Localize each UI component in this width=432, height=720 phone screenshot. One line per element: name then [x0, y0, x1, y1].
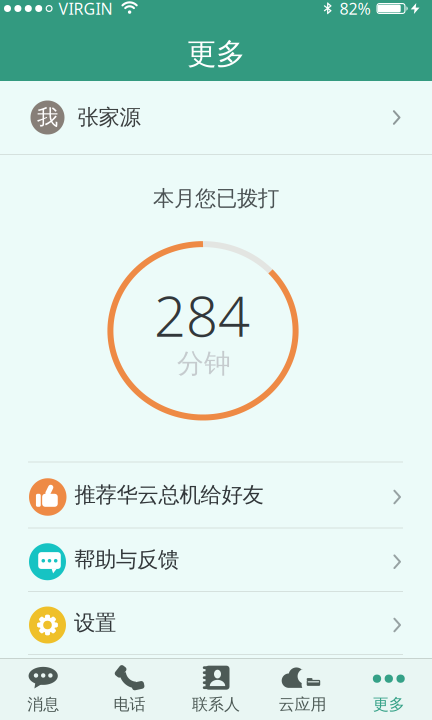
staticText: 284 [154, 278, 250, 352]
staticText: 电话 [114, 695, 146, 714]
staticText: 帮助与反馈 [74, 547, 179, 573]
button[interactable]: 云应用 [259, 657, 346, 720]
button[interactable]: 帮助与反馈 [0, 528, 432, 591]
staticText: 张家源 [77, 104, 140, 131]
staticText: 推荐华云总机给好友 [74, 482, 263, 508]
button[interactable]: 联系人 [173, 657, 259, 720]
staticText: 消息 [27, 695, 59, 714]
button[interactable]: 我 [0, 81, 432, 154]
staticText: 更多 [187, 36, 245, 72]
staticText: 本月您已拨打 [153, 185, 279, 212]
staticText: 82% [339, 0, 370, 19]
staticText: 联系人 [192, 695, 240, 714]
staticText: 我 [37, 104, 58, 131]
button[interactable]: 消息 [0, 657, 86, 720]
button[interactable]: 更多 [346, 657, 432, 720]
button[interactable]: 推荐华云总机给好友 [0, 462, 432, 527]
staticText: 云应用 [278, 695, 326, 714]
staticText: 更多 [373, 695, 405, 714]
button[interactable]: 电话 [86, 657, 173, 720]
button[interactable]: 设置 [0, 592, 432, 654]
staticText: VIRGIN [59, 0, 113, 19]
staticText: 设置 [74, 610, 116, 636]
staticText: 分钟 [177, 347, 231, 380]
